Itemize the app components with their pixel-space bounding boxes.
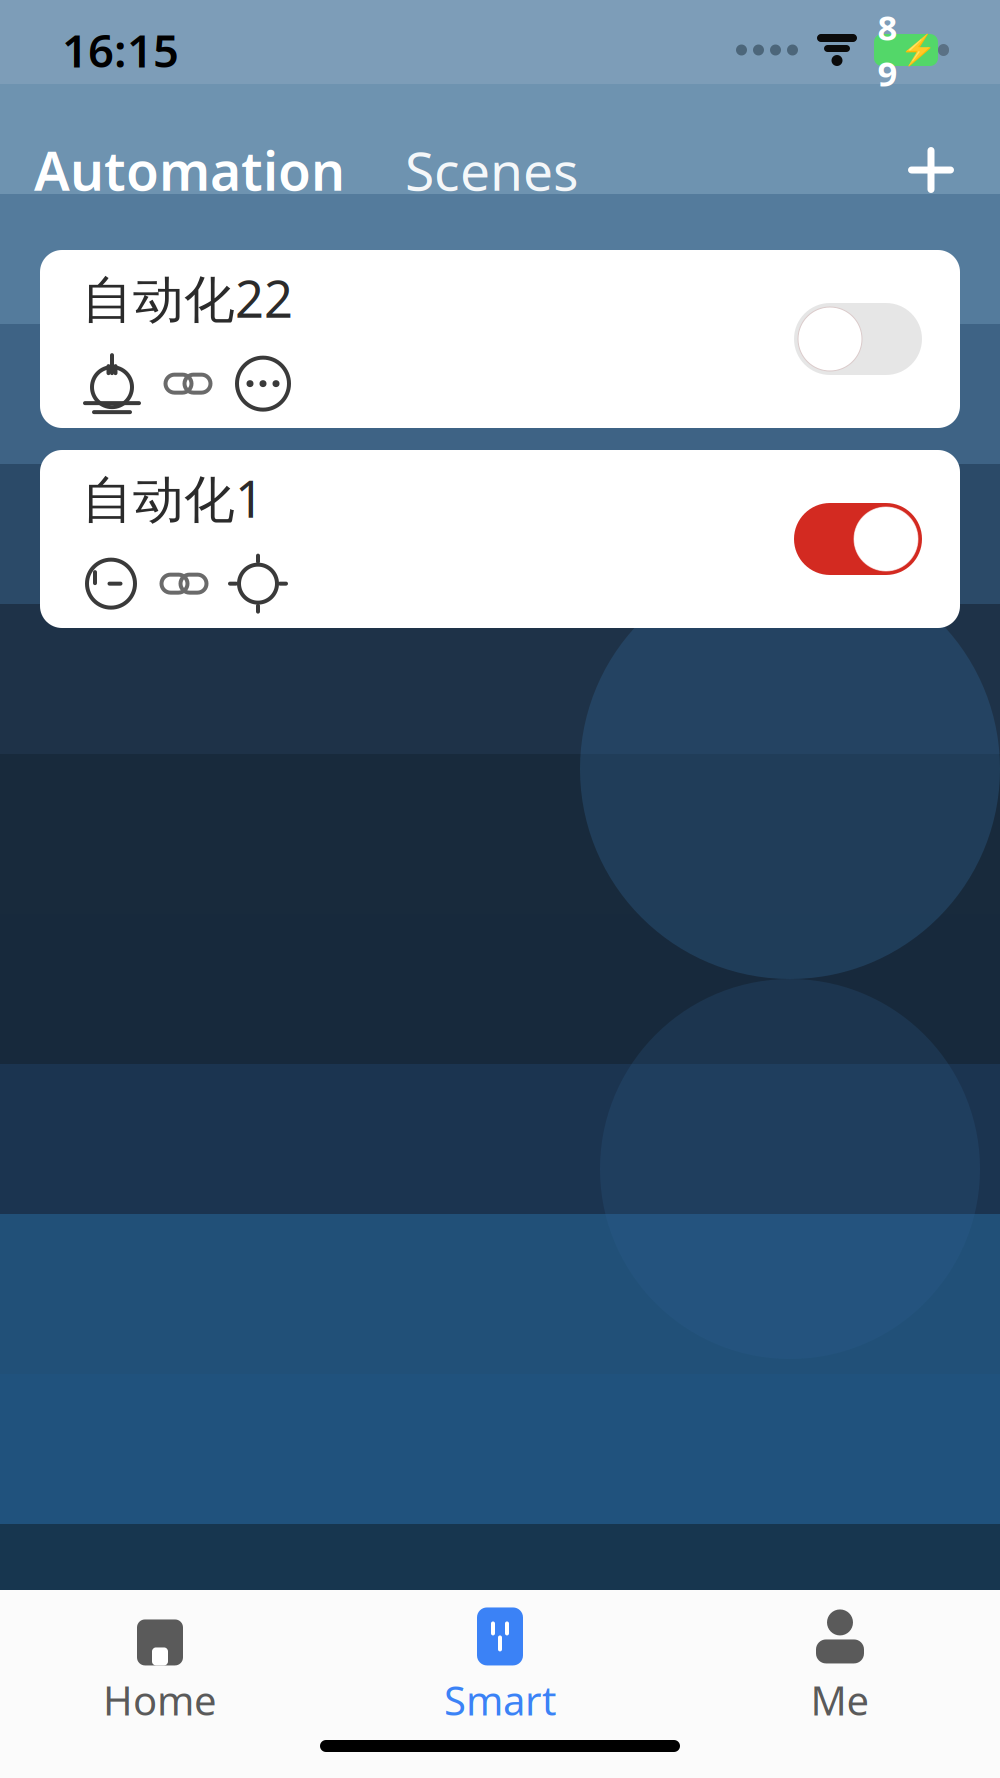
staticText: Home xyxy=(103,1673,217,1726)
button[interactable]: 自动化1 xyxy=(40,450,960,628)
staticText: 89 xyxy=(877,4,897,96)
staticText: 自动化22 xyxy=(82,264,293,332)
staticText: Me xyxy=(810,1673,869,1726)
button[interactable]: 自动化22 xyxy=(40,250,960,428)
button[interactable]: Scenes xyxy=(345,125,579,215)
staticText: Automation xyxy=(34,135,345,205)
button[interactable]: Add automation xyxy=(896,135,966,205)
button[interactable]: Me xyxy=(690,1612,990,1722)
button[interactable]: Smart xyxy=(350,1612,650,1722)
staticText: ⚡ xyxy=(899,33,936,67)
staticText: 自动化1 xyxy=(82,464,264,532)
staticText: Smart xyxy=(444,1673,556,1726)
staticText: 16:15 xyxy=(62,20,179,80)
button[interactable]: Home xyxy=(10,1612,310,1722)
staticText: Scenes xyxy=(405,135,579,205)
button[interactable]: Automation xyxy=(34,125,345,215)
